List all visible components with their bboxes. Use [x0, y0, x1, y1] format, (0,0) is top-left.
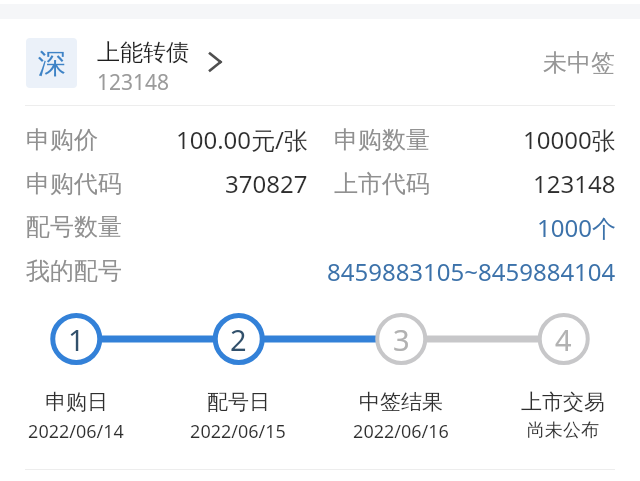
staticText: 123148 [533, 167, 616, 200]
staticText: 1000个 [537, 211, 616, 244]
staticText: 申购日 [45, 389, 108, 415]
staticText: 上市代码 [334, 169, 430, 199]
staticText: 未中签 [543, 48, 615, 78]
staticText: 2022/06/16 [353, 419, 449, 444]
staticText: 2022/06/14 [28, 419, 124, 444]
staticText: 深 [38, 46, 66, 81]
staticText: 上能转债 [97, 38, 189, 67]
staticText: 123148 [97, 68, 170, 97]
staticText: 尚未公布 [527, 419, 599, 442]
staticText: 上市交易 [521, 389, 605, 415]
other: 查看详情 [207, 50, 221, 74]
staticText: 我的配号 [26, 256, 122, 286]
staticText: 2022/06/15 [190, 419, 286, 444]
staticText: 申购代码 [26, 169, 122, 199]
staticText: 2 [230, 320, 247, 359]
staticText: 配号日 [207, 389, 270, 415]
staticText: 申购数量 [334, 125, 430, 155]
staticText: 中签结果 [359, 389, 443, 415]
staticText: 配号数量 [26, 212, 122, 242]
staticText: 1 [68, 320, 85, 359]
staticText: 申购价 [26, 125, 98, 155]
staticText: 10000张 [523, 123, 616, 156]
staticText: 370827 [225, 167, 308, 200]
staticText: 8459883105~8459884104 [327, 255, 616, 288]
staticText: 4 [555, 320, 572, 359]
staticText: 100.00元/张 [176, 123, 308, 156]
button[interactable]: 深 [0, 19, 640, 105]
staticText: 3 [393, 320, 410, 359]
